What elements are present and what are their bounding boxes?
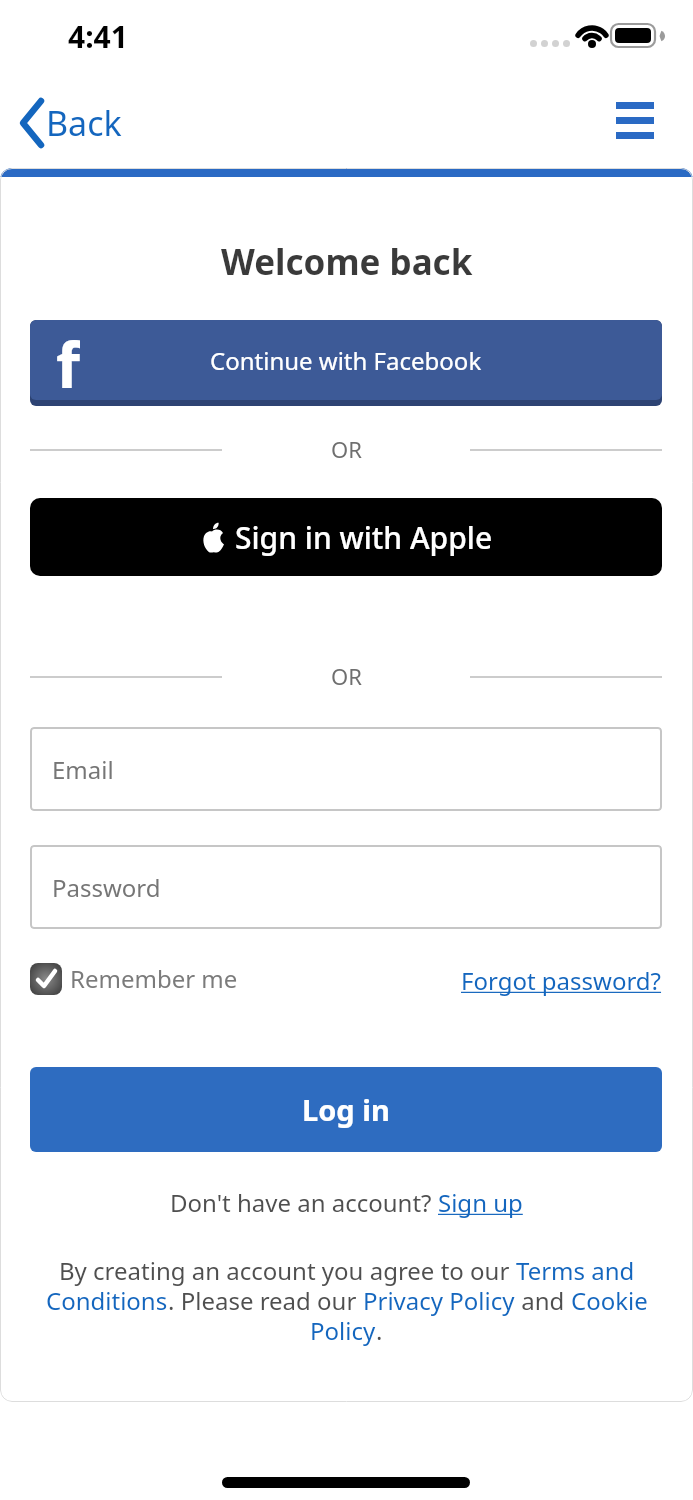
button[interactable]: Cookie [571, 1284, 648, 1317]
staticText: . [376, 1314, 383, 1347]
button[interactable] [616, 102, 654, 139]
button[interactable]: Policy [310, 1314, 376, 1347]
button[interactable]: Sign in with Apple [30, 498, 662, 576]
staticText: OR [331, 661, 362, 691]
button[interactable]: Privacy Policy [363, 1284, 515, 1317]
button[interactable]: Email [30, 727, 662, 811]
button[interactable]: Password [30, 845, 662, 929]
staticText: Password [52, 871, 161, 904]
staticText: Log in [302, 1090, 390, 1129]
button[interactable]: Back [16, 98, 122, 148]
button[interactable]: f [30, 320, 662, 406]
staticText: and [515, 1284, 571, 1317]
staticText: Remember me [70, 962, 238, 995]
button[interactable]: Terms and [516, 1254, 635, 1287]
button[interactable]: Forgot password? [461, 964, 662, 997]
button[interactable]: Log in [30, 1067, 662, 1152]
button[interactable]: Remember me [30, 962, 238, 995]
staticText: By creating an account you agree to our [59, 1254, 516, 1287]
staticText: Don't have an account? [170, 1186, 438, 1219]
button[interactable]: Conditions [46, 1284, 168, 1317]
staticText: 4:41 [68, 16, 128, 57]
staticText: Sign in with Apple [235, 517, 493, 558]
staticText: Email [52, 753, 114, 786]
staticText: OR [331, 434, 362, 464]
staticText: Continue with Facebook [210, 344, 482, 377]
staticText: . Please read our [168, 1284, 363, 1317]
button[interactable]: Sign up [438, 1186, 523, 1219]
staticText: Back [46, 100, 122, 146]
staticText: Welcome back [221, 238, 473, 286]
staticText: f [56, 322, 80, 400]
